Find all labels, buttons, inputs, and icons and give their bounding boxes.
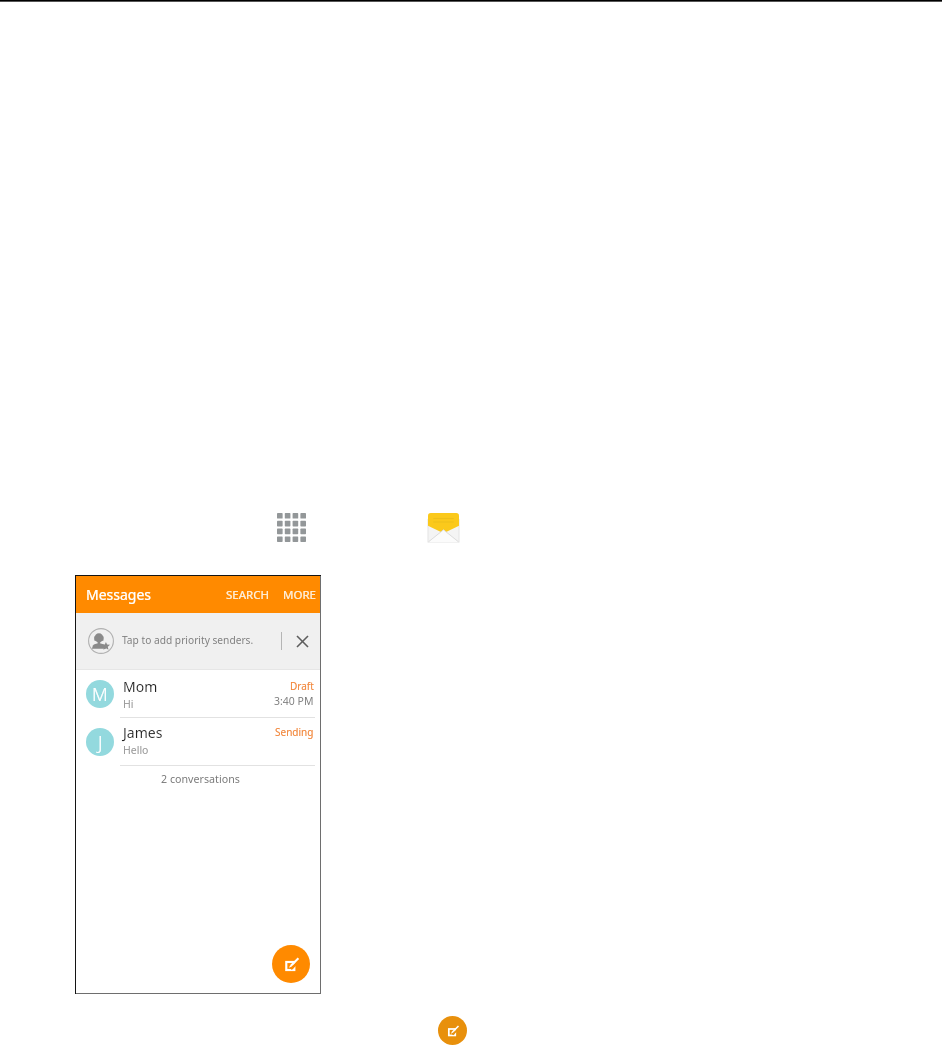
- staticText: Mom: [123, 677, 158, 696]
- staticText: Messages: [86, 585, 152, 604]
- staticText: Hello: [123, 743, 149, 757]
- staticText: 2 conversations: [161, 772, 240, 787]
- button[interactable]: M: [76, 670, 320, 717]
- staticText: Tap to add priority senders.: [122, 633, 254, 647]
- button[interactable]: Tap to add priority senders.: [76, 613, 320, 669]
- staticText: MORE: [283, 587, 316, 603]
- button[interactable]: MORE: [277, 578, 322, 612]
- staticText: Hi: [123, 697, 134, 711]
- staticText: J: [98, 730, 103, 755]
- button[interactable]: Compose: [438, 1016, 467, 1045]
- staticText: M: [92, 682, 108, 707]
- button[interactable]: Messages: [428, 513, 459, 542]
- button[interactable]: Apps: [277, 513, 306, 542]
- staticText: SEARCH: [226, 587, 269, 603]
- button[interactable]: J: [76, 718, 320, 765]
- staticText: Sending: [275, 725, 314, 739]
- staticText: Draft: [290, 679, 314, 693]
- button[interactable]: SEARCH: [220, 578, 275, 612]
- button[interactable]: Close: [290, 629, 314, 653]
- button[interactable]: Compose message: [272, 945, 310, 983]
- staticText: 3:40 PM: [274, 694, 314, 708]
- staticText: James: [123, 723, 163, 742]
